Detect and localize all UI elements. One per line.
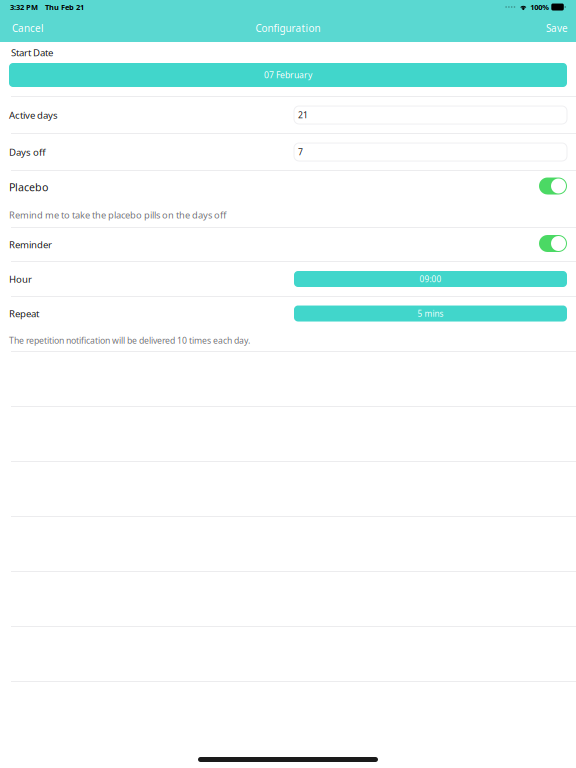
staticText: Cancel	[12, 21, 44, 35]
staticText: Reminder	[9, 238, 52, 251]
staticText: 7	[298, 146, 303, 158]
staticText: Remind me to take the placebo pills on t…	[9, 209, 226, 221]
button[interactable]: Cancel	[0, 15, 52, 41]
button[interactable]: 21	[294, 106, 567, 124]
staticText: 100%	[530, 2, 549, 12]
button[interactable]: Toggle	[539, 177, 567, 196]
staticText: Active days	[9, 108, 58, 122]
staticText: Repeat	[9, 307, 39, 320]
staticText: 5 mins	[417, 308, 443, 319]
staticText: Start Date	[11, 46, 53, 59]
staticText: Days off	[9, 145, 46, 159]
staticText: Configuration	[255, 21, 320, 35]
button[interactable]: Save	[538, 15, 576, 41]
button[interactable]: 09:00	[294, 271, 567, 287]
button[interactable]: Toggle	[539, 235, 567, 254]
staticText: 3:32 PM	[10, 2, 38, 12]
staticText: 09:00	[419, 273, 441, 285]
button[interactable]: 07 February	[9, 63, 567, 87]
staticText: Hour	[9, 272, 32, 286]
button[interactable]: 5 mins	[294, 305, 567, 321]
staticText: 07 February	[264, 69, 312, 81]
staticText: 21	[298, 109, 308, 121]
staticText: Placebo	[9, 180, 48, 194]
staticText: Thu Feb 21	[45, 2, 84, 12]
staticText: The repetition notification will be deli…	[9, 335, 250, 346]
staticText: Save	[546, 21, 568, 35]
button[interactable]: 7	[294, 143, 567, 161]
